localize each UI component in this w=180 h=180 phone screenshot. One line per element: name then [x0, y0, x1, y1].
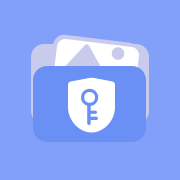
button[interactable]: Secure wallet: [0, 0, 180, 180]
